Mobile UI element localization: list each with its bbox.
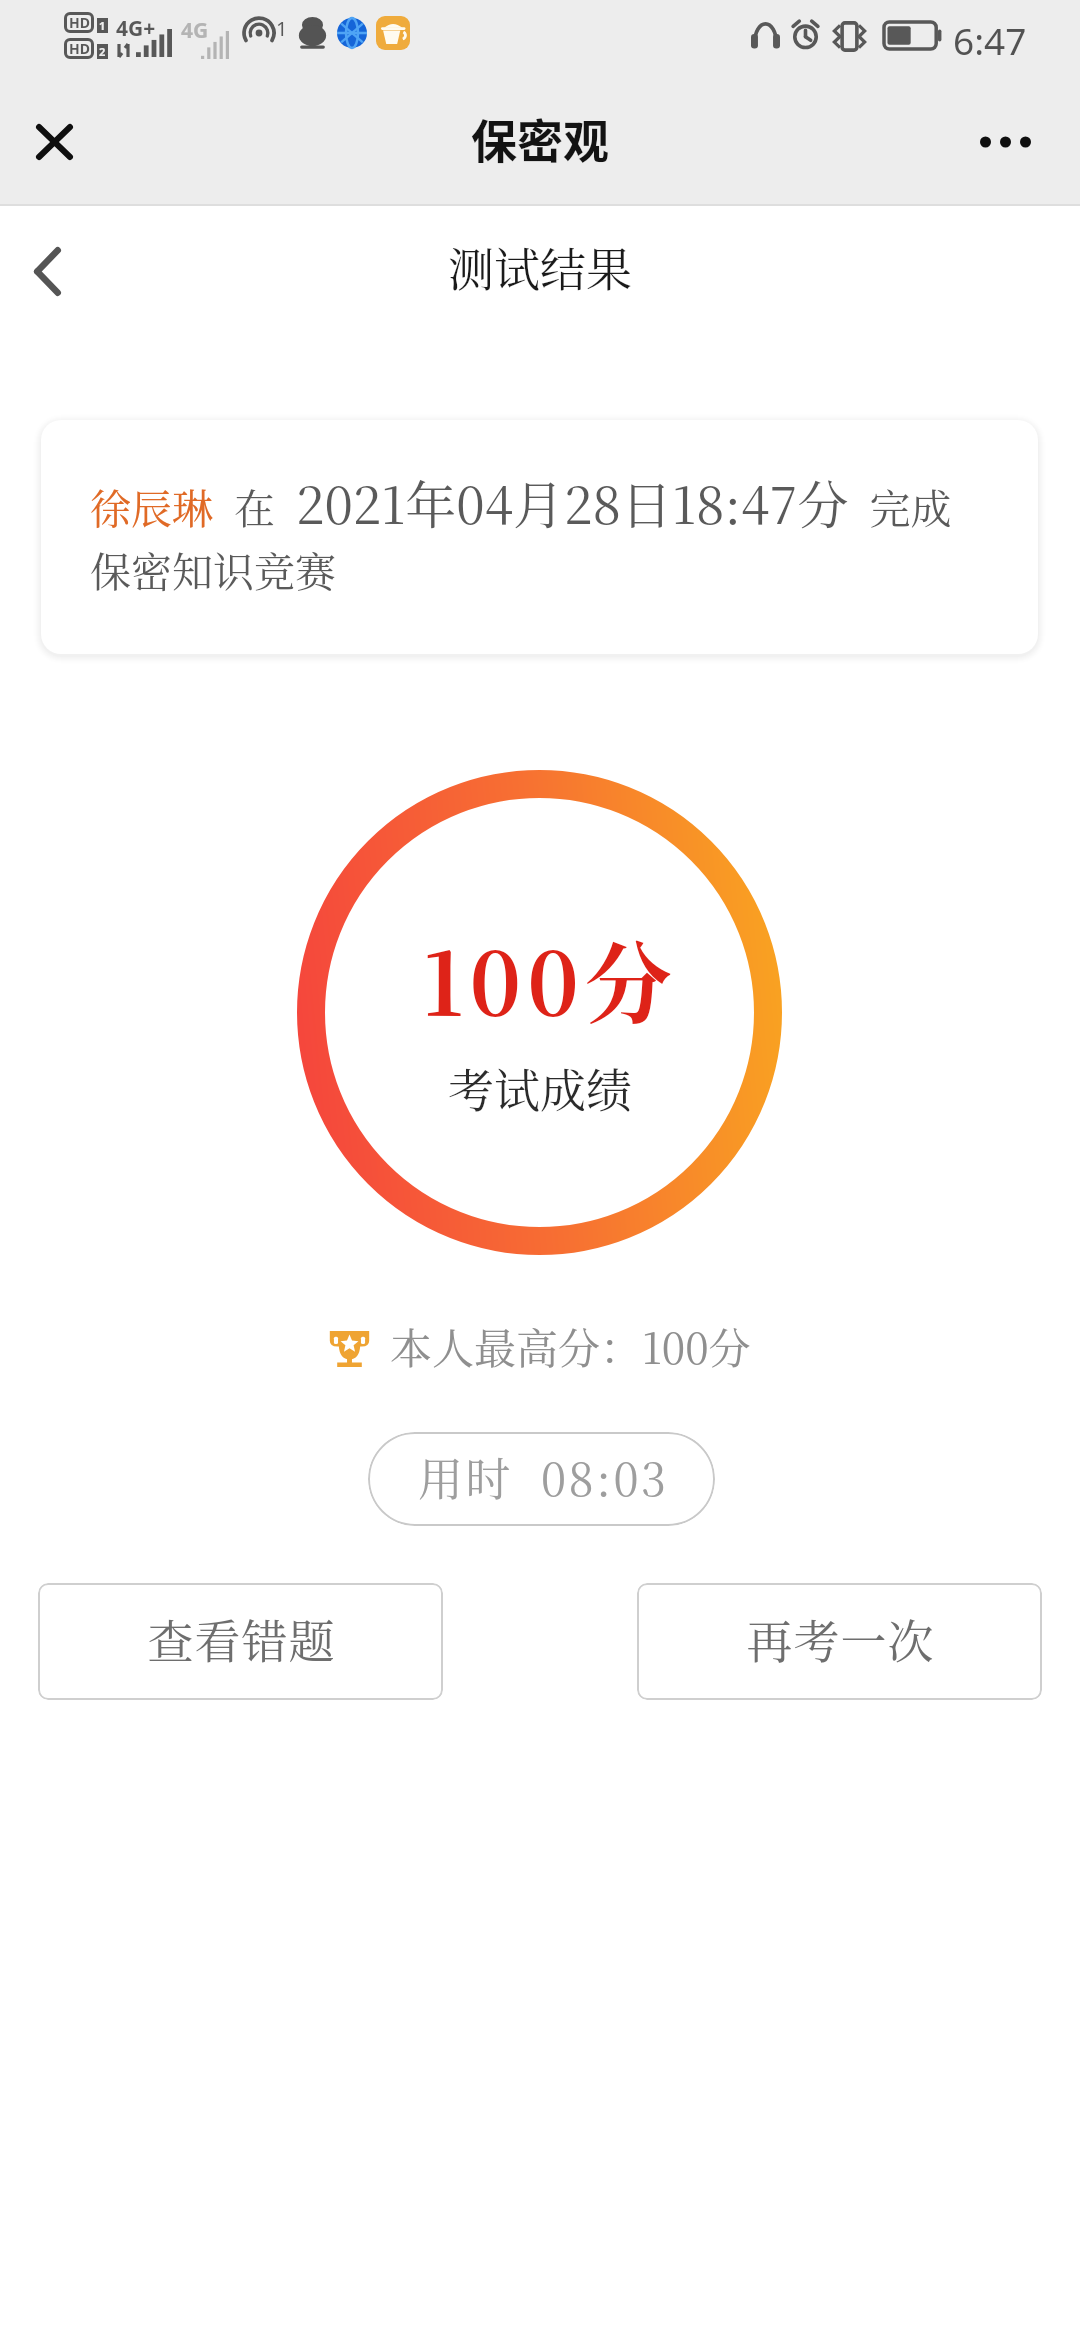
button[interactable]: 用时 08:03 (368, 1432, 715, 1526)
staticText: 考试成绩 (448, 1054, 632, 1120)
staticText: 本人最高分：100分 (390, 1316, 751, 1376)
staticText: 徐辰琳 在 2021年04月28日18:47分 完成 保密知识竞赛 (90, 465, 1038, 599)
button[interactable]: Close (0, 87, 109, 197)
staticText: HD (69, 39, 90, 58)
staticText: 6:47 (953, 15, 1027, 65)
button[interactable]: More options (949, 86, 1061, 198)
staticText: 4G+ (116, 14, 156, 43)
staticText: 查看错题 (147, 1605, 335, 1671)
staticText: 100分 (423, 916, 678, 1041)
button[interactable]: 再考一次 (637, 1583, 1042, 1700)
button[interactable]: Back (0, 216, 102, 326)
staticText: 4G (181, 16, 209, 45)
button[interactable]: 查看错题 (38, 1583, 443, 1700)
staticText: 1 (99, 18, 106, 33)
staticText: 再考一次 (746, 1605, 934, 1671)
staticText: 用时 08:03 (418, 1444, 669, 1509)
staticText: 2 (99, 44, 106, 59)
staticText: HD (69, 13, 90, 32)
staticText: 1 (276, 15, 288, 42)
staticText: 测试结果 (448, 233, 632, 299)
staticText: 保密观 (471, 105, 609, 172)
